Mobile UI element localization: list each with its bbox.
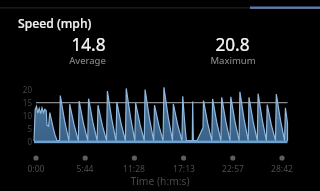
staticText: 10 bbox=[22, 110, 32, 121]
staticText: 15 bbox=[22, 97, 32, 108]
staticText: Average bbox=[69, 54, 106, 67]
staticText: 11:28 bbox=[123, 163, 145, 175]
staticText: Maximum bbox=[210, 54, 256, 67]
staticText: 0:00 bbox=[27, 163, 45, 175]
staticText: 28:42 bbox=[271, 163, 293, 175]
staticText: 22:57 bbox=[222, 163, 244, 175]
staticText: 14.8 bbox=[71, 33, 106, 56]
staticText: 20 bbox=[22, 84, 32, 95]
staticText: 17:13 bbox=[173, 163, 195, 175]
staticText: 0 bbox=[27, 136, 32, 147]
staticText: 5:44 bbox=[76, 163, 94, 175]
staticText: Speed (mph) bbox=[18, 15, 92, 32]
staticText: 5 bbox=[27, 123, 32, 134]
staticText: 20.8 bbox=[215, 33, 250, 56]
staticText: Time (h:m:s) bbox=[130, 174, 190, 188]
